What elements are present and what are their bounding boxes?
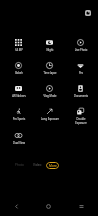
staticText: Night (40, 48, 60, 52)
button[interactable]: Recent apps (65, 196, 98, 216)
button[interactable]: Video (28, 160, 46, 170)
staticText: 64 MP (9, 48, 29, 52)
button[interactable]: Switch camera (81, 6, 95, 20)
button[interactable]: Night (34, 38, 65, 53)
staticText: Bokeh (9, 71, 29, 75)
button[interactable]: Time lapse (34, 61, 65, 76)
button[interactable]: Vlog Mode (34, 84, 65, 99)
button[interactable]: Pro Sports (3, 107, 34, 122)
staticText: Photo (15, 163, 24, 167)
staticText: Vlog Mode (40, 94, 60, 98)
button[interactable]: Bokeh (3, 61, 34, 76)
staticText: Live Photo (71, 48, 91, 52)
button[interactable]: AR Stickers (3, 84, 34, 99)
button[interactable]: Documents (65, 84, 96, 99)
button[interactable]: Home (32, 196, 65, 216)
staticText: Double Exposure (71, 117, 91, 125)
button[interactable]: Back (0, 196, 32, 216)
button[interactable]: Live Photo (65, 38, 96, 53)
button[interactable]: Long Exposure (34, 107, 65, 122)
staticText: Documents (71, 94, 91, 98)
button[interactable]: Double Exposure (65, 107, 96, 126)
button[interactable]: 64 MP (3, 38, 34, 53)
staticText: AR Stickers (9, 94, 29, 98)
button[interactable]: Photo (10, 160, 28, 170)
button[interactable]: More (46, 162, 59, 169)
staticText: Pro (71, 71, 91, 75)
staticText: Long Exposure (40, 117, 60, 121)
staticText: More (49, 164, 57, 168)
staticText: Time lapse (40, 71, 60, 75)
staticText: Pro Sports (9, 117, 29, 121)
button[interactable]: Dual View (3, 131, 34, 146)
staticText: Video (33, 163, 42, 167)
button[interactable]: Pro (65, 61, 96, 76)
staticText: Dual View (9, 141, 29, 145)
